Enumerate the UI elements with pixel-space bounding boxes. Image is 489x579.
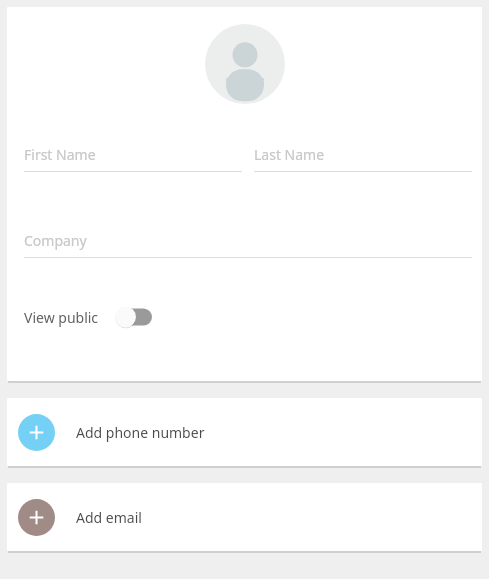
button[interactable]: First Name [24,135,242,172]
staticText: Add phone number [76,423,205,442]
staticText: View public [24,308,99,327]
staticText: First Name [24,145,96,164]
staticText: Add email [76,508,142,527]
button[interactable]: Last Name [254,135,472,172]
button[interactable]: View public toggle [114,306,152,328]
button[interactable]: Profile photo [205,24,285,104]
button[interactable]: Add phone number [7,398,482,466]
staticText: Last Name [254,145,325,164]
staticText: Company [24,231,87,250]
button[interactable]: View public [7,297,482,337]
button[interactable]: Add email [7,483,482,551]
button[interactable]: Company [24,221,472,258]
